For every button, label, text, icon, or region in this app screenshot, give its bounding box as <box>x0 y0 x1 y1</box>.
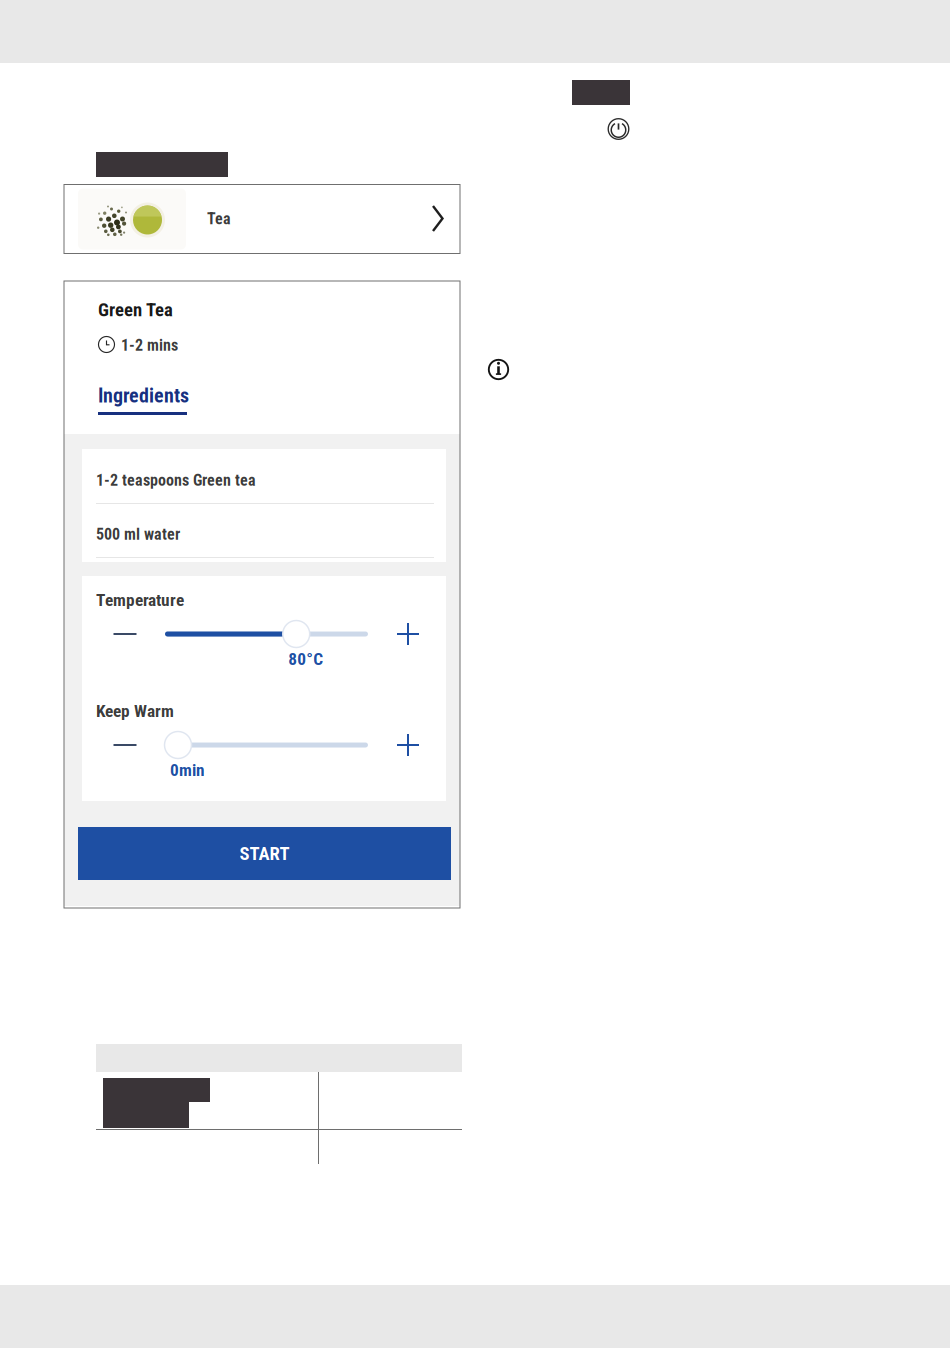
staticText: Ingredients <box>98 384 189 407</box>
staticText: 1-2 teaspoons Green tea <box>96 471 256 490</box>
staticText: 80°C <box>288 649 323 669</box>
button[interactable]: Decrease Temperature <box>103 619 147 649</box>
button[interactable]: Ingredients <box>98 384 208 422</box>
staticText: Temperature <box>96 590 184 610</box>
button[interactable]: Increase Keep Warm <box>386 729 430 761</box>
button[interactable]: Increase Temperature <box>386 618 430 650</box>
staticText: 1-2 mins <box>121 336 178 355</box>
button[interactable]: Decrease Keep Warm <box>103 730 147 760</box>
button[interactable]: Tea <box>64 184 460 253</box>
button[interactable]: Power <box>607 118 629 140</box>
button[interactable]: START <box>78 827 451 880</box>
staticText: START <box>239 843 289 864</box>
staticText: 0min <box>170 760 205 780</box>
staticText: Keep Warm <box>96 701 174 721</box>
staticText: Green Tea <box>98 299 173 321</box>
staticText: Tea <box>207 209 231 228</box>
button[interactable]: Information <box>488 359 509 380</box>
staticText: 500 ml water <box>96 525 180 544</box>
